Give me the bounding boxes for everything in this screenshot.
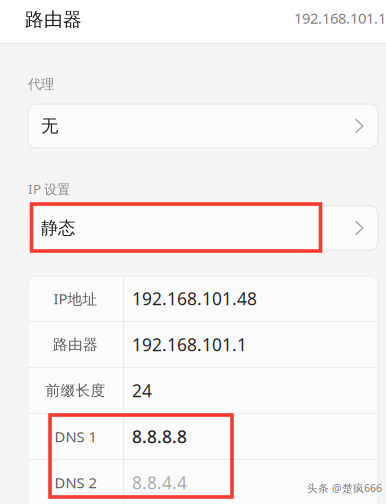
staticText: 8.8.4.4 [132, 471, 187, 494]
staticText: 路由器 [53, 335, 98, 353]
staticText: 路由器 [25, 8, 82, 31]
staticText: 192.168.101.1 [294, 8, 386, 28]
staticText: 192.168.101.1 [132, 333, 247, 356]
staticText: 头条 @楚疯666 [307, 481, 382, 495]
staticText: 静态 [41, 217, 75, 239]
staticText: 24 [132, 379, 152, 402]
staticText: IP地址 [53, 289, 97, 308]
staticText: DNS 2 [54, 473, 96, 492]
staticText: IP 设置 [28, 180, 70, 198]
staticText: 前缀长度 [45, 381, 105, 399]
button[interactable]: 静态 [28, 206, 378, 250]
staticText: 代理 [28, 76, 54, 92]
staticText: 无 [41, 115, 58, 137]
staticText: 8.8.8.8 [132, 425, 187, 448]
staticText: DNS 1 [54, 427, 96, 446]
staticText: 192.168.101.48 [132, 287, 257, 310]
button[interactable]: 无 [28, 104, 378, 148]
